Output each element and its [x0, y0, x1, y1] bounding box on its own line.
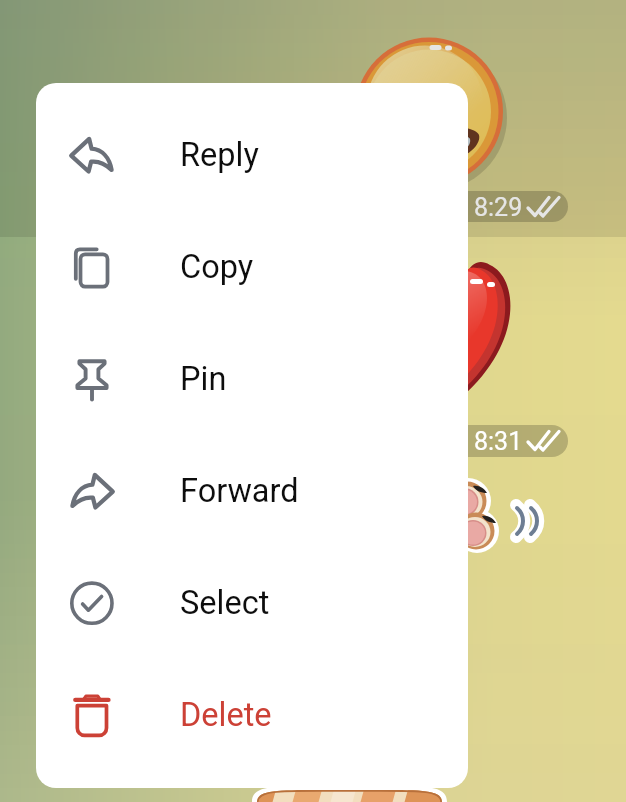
button[interactable]: Forward [36, 446, 468, 558]
staticText: Select [180, 584, 270, 622]
staticText: 8:31 [474, 427, 523, 456]
button[interactable]: Copy [36, 222, 468, 334]
staticText: Delete [180, 696, 272, 734]
staticText: Forward [180, 472, 299, 510]
staticText: Copy [180, 248, 254, 286]
staticText: Pin [180, 360, 227, 398]
button[interactable]: Select [36, 558, 468, 670]
staticText: Reply [180, 136, 259, 174]
button[interactable]: Reply [36, 110, 468, 222]
button[interactable]: Delete [36, 670, 468, 782]
staticText: 8:29 [474, 193, 523, 222]
button[interactable]: Pin [36, 334, 468, 446]
